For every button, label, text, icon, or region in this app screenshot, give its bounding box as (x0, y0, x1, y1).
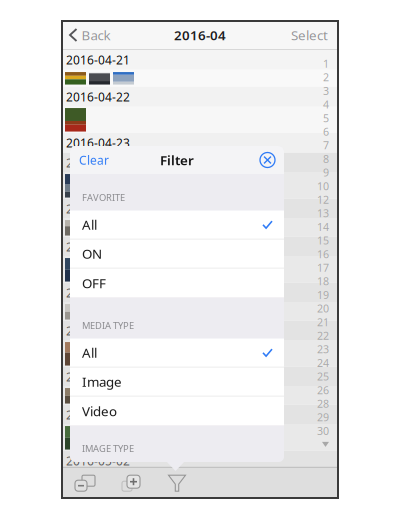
staticText: 5 (323, 111, 329, 125)
staticText: 1 (323, 56, 329, 71)
staticText: 2016-04-21 (66, 52, 130, 68)
staticText: 2016-04-25 (66, 201, 130, 217)
staticText: 2016-05-03 (66, 491, 130, 507)
staticText: 22 (317, 328, 329, 343)
staticText: 7 (323, 138, 329, 152)
staticText: 2016-04-22 (66, 89, 130, 105)
staticText: Video (82, 402, 117, 420)
staticText: 21 (317, 315, 329, 329)
staticText: Back (81, 26, 110, 44)
button[interactable]: ON (70, 239, 284, 268)
staticText: 13 (317, 206, 329, 220)
staticText: 2016-04-29 (66, 323, 130, 339)
staticText: 6 (323, 124, 329, 139)
button[interactable]: Image (70, 367, 284, 396)
staticText: 9 (323, 165, 329, 179)
button[interactable]: Remove from album (62, 468, 108, 498)
staticText: 2016-04-23 (66, 135, 130, 151)
staticText: 2016-04-26 (66, 239, 130, 255)
staticText: All (82, 216, 97, 233)
staticText: 2016-05-01 (66, 407, 130, 423)
staticText: 30 (317, 424, 329, 438)
button[interactable]: Video (70, 396, 284, 425)
staticText: OFF (82, 274, 106, 292)
button[interactable]: Filter (154, 468, 200, 498)
staticText: 2016-04 (174, 26, 226, 44)
staticText: 2016-04-28 (66, 285, 130, 301)
staticText: 23 (317, 342, 329, 356)
staticText: 28 (317, 396, 329, 411)
staticText: 17 (317, 260, 329, 275)
staticText: 2 (323, 70, 329, 84)
staticText: 10 (317, 179, 329, 193)
staticText: 18 (317, 274, 329, 288)
staticText: 29 (317, 410, 329, 424)
button[interactable]: Clear (70, 146, 118, 174)
staticText: 20 (317, 301, 329, 315)
staticText: 8 (323, 152, 329, 166)
button[interactable]: Select (281, 21, 338, 49)
staticText: All (82, 344, 97, 361)
staticText: Image (82, 373, 122, 390)
staticText: Filter (160, 151, 194, 169)
staticText: 19 (317, 288, 329, 302)
staticText: 24 (317, 356, 329, 370)
button[interactable]: Back (62, 21, 118, 49)
staticText: FAVORITE (82, 191, 125, 203)
staticText: 14 (317, 220, 329, 234)
staticText: 25 (317, 369, 329, 383)
staticText: 3 (323, 84, 329, 98)
staticText: 2016-04-24 (66, 155, 130, 171)
staticText: Select (291, 26, 328, 44)
staticText: IMAGE TYPE (82, 442, 134, 454)
staticText: 26 (317, 383, 329, 397)
staticText: 16 (317, 247, 329, 261)
button[interactable]: All (70, 338, 284, 367)
button[interactable]: Section index (307, 50, 329, 467)
button[interactable]: Add to album (108, 468, 154, 498)
staticText: 4 (323, 97, 329, 111)
button[interactable]: OFF (70, 268, 284, 297)
staticText: Clear (79, 152, 109, 168)
button[interactable]: Close (251, 146, 284, 174)
staticText: MEDIA TYPE (82, 319, 134, 331)
button[interactable]: All (70, 210, 284, 239)
staticText: ON (82, 245, 102, 262)
staticText: 2016-04-30 (66, 369, 130, 385)
staticText: 2016-05-02 (66, 453, 130, 469)
staticText: 15 (317, 233, 329, 247)
staticText: 12 (317, 192, 329, 207)
